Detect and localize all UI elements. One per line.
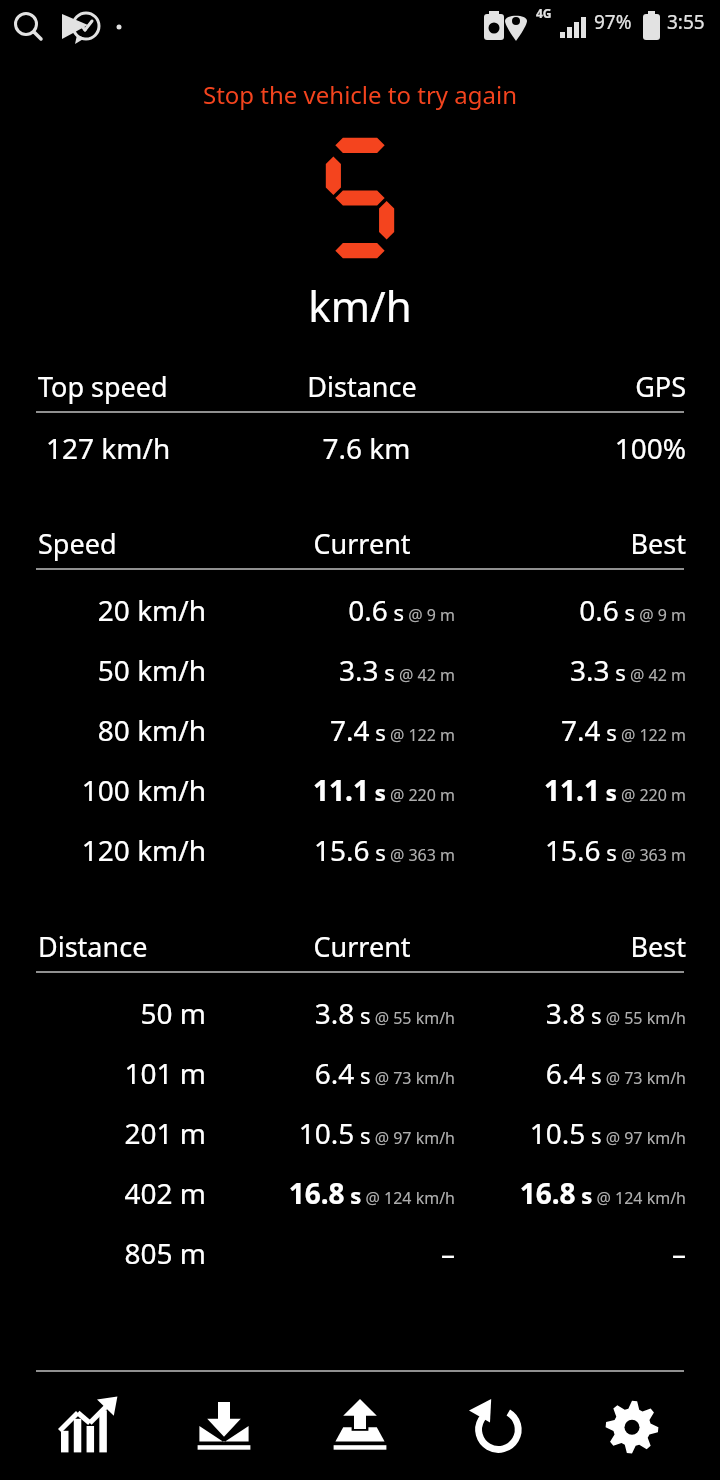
- staticText: 11.1 s @ 220 m: [206, 771, 455, 809]
- button[interactable]: 120 km/h: [0, 820, 720, 880]
- staticText: 6.4 s @ 73 km/h: [206, 1054, 455, 1092]
- button[interactable]: 80 km/h: [0, 700, 720, 760]
- staticText: 97%: [594, 9, 632, 35]
- button[interactable]: Settings: [584, 1378, 680, 1474]
- staticText: 805 m: [0, 1234, 206, 1272]
- staticText: 3.3 s @ 42 m: [463, 651, 686, 689]
- button[interactable]: Chart: [40, 1378, 136, 1474]
- button[interactable]: 402 m: [0, 1163, 720, 1223]
- staticText: 402 m: [0, 1174, 206, 1212]
- button[interactable]: 50 m: [0, 983, 720, 1043]
- staticText: 50 m: [0, 994, 206, 1032]
- staticText: Current: [254, 525, 470, 562]
- staticText: 10.5 s @ 97 km/h: [463, 1114, 686, 1152]
- staticText: 20 km/h: [0, 591, 206, 629]
- staticText: 15.6 s @ 363 m: [463, 831, 686, 869]
- staticText: GPS: [470, 368, 686, 405]
- staticText: Speed: [38, 525, 254, 562]
- button[interactable]: Reset: [448, 1378, 544, 1474]
- staticText: 0.6 s @ 9 m: [463, 591, 686, 629]
- staticText: Stop the vehicle to try again: [0, 78, 720, 111]
- staticText: 15.6 s @ 363 m: [206, 831, 455, 869]
- staticText: 3:55: [667, 9, 705, 35]
- button[interactable]: 50 km/h: [0, 640, 720, 700]
- staticText: 11.1 s @ 220 m: [463, 771, 686, 809]
- button[interactable]: 201 m: [0, 1103, 720, 1163]
- staticText: 120 km/h: [0, 831, 206, 869]
- staticText: –: [463, 1234, 686, 1272]
- staticText: Distance: [254, 368, 470, 405]
- staticText: Top speed: [38, 368, 254, 405]
- staticText: 80 km/h: [0, 711, 206, 749]
- staticText: 0.6 s @ 9 m: [206, 591, 455, 629]
- button[interactable]: 101 m: [0, 1043, 720, 1103]
- staticText: Best: [470, 928, 686, 965]
- staticText: 3.8 s @ 55 km/h: [463, 994, 686, 1032]
- staticText: 3.8 s @ 55 km/h: [206, 994, 455, 1032]
- button[interactable]: 805 m: [0, 1223, 720, 1283]
- staticText: 16.8 s @ 124 km/h: [463, 1174, 686, 1212]
- staticText: Distance: [38, 928, 254, 965]
- staticText: 100%: [473, 429, 686, 467]
- staticText: 3.3 s @ 42 m: [206, 651, 455, 689]
- staticText: 201 m: [0, 1114, 206, 1152]
- staticText: 7.4 s @ 122 m: [206, 711, 455, 749]
- staticText: 50 km/h: [0, 651, 206, 689]
- staticText: 7.4 s @ 122 m: [463, 711, 686, 749]
- staticText: Best: [470, 525, 686, 562]
- staticText: 127 km/h: [46, 429, 260, 467]
- staticText: 101 m: [0, 1054, 206, 1092]
- button[interactable]: Import: [176, 1378, 272, 1474]
- button[interactable]: 20 km/h: [0, 580, 720, 640]
- staticText: 16.8 s @ 124 km/h: [206, 1174, 455, 1212]
- staticText: 4G: [536, 5, 552, 21]
- staticText: 7.6 km: [260, 429, 473, 467]
- staticText: 6.4 s @ 73 km/h: [463, 1054, 686, 1092]
- button[interactable]: Export: [312, 1378, 408, 1474]
- staticText: –: [206, 1234, 455, 1272]
- staticText: 100 km/h: [0, 771, 206, 809]
- staticText: km/h: [0, 277, 720, 334]
- staticText: Current: [254, 928, 470, 965]
- button[interactable]: 100 km/h: [0, 760, 720, 820]
- staticText: 10.5 s @ 97 km/h: [206, 1114, 455, 1152]
